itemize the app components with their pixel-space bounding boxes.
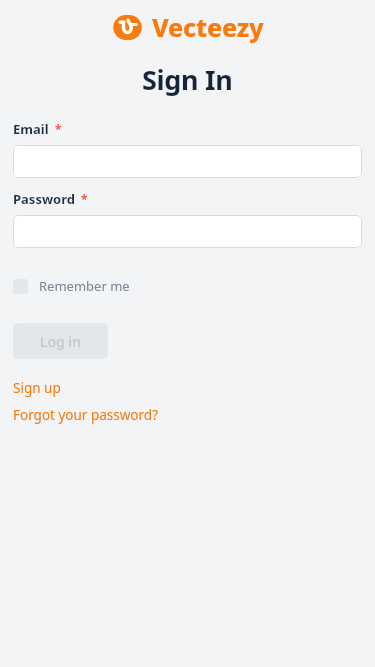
staticText: Password [13,190,75,208]
staticText: Sign up [13,379,61,397]
button[interactable] [13,145,362,178]
staticText: Forgot your password? [13,406,159,424]
button[interactable]: Vecteezy logo [0,10,375,44]
staticText: Email [13,120,49,138]
staticText: Remember me [39,277,130,295]
button[interactable] [13,215,362,248]
staticText: * [81,191,88,207]
staticText: Vecteezy [152,10,264,44]
staticText: * [55,121,62,137]
other: Vecteezy logo [112,12,143,43]
staticText: Log in [40,332,81,351]
staticText: Sign In [142,61,233,98]
button[interactable]: Remember me [13,275,130,297]
button[interactable]: Sign up [13,379,61,397]
button[interactable]: Forgot your password? [13,406,159,424]
button[interactable]: Log in [13,323,108,359]
